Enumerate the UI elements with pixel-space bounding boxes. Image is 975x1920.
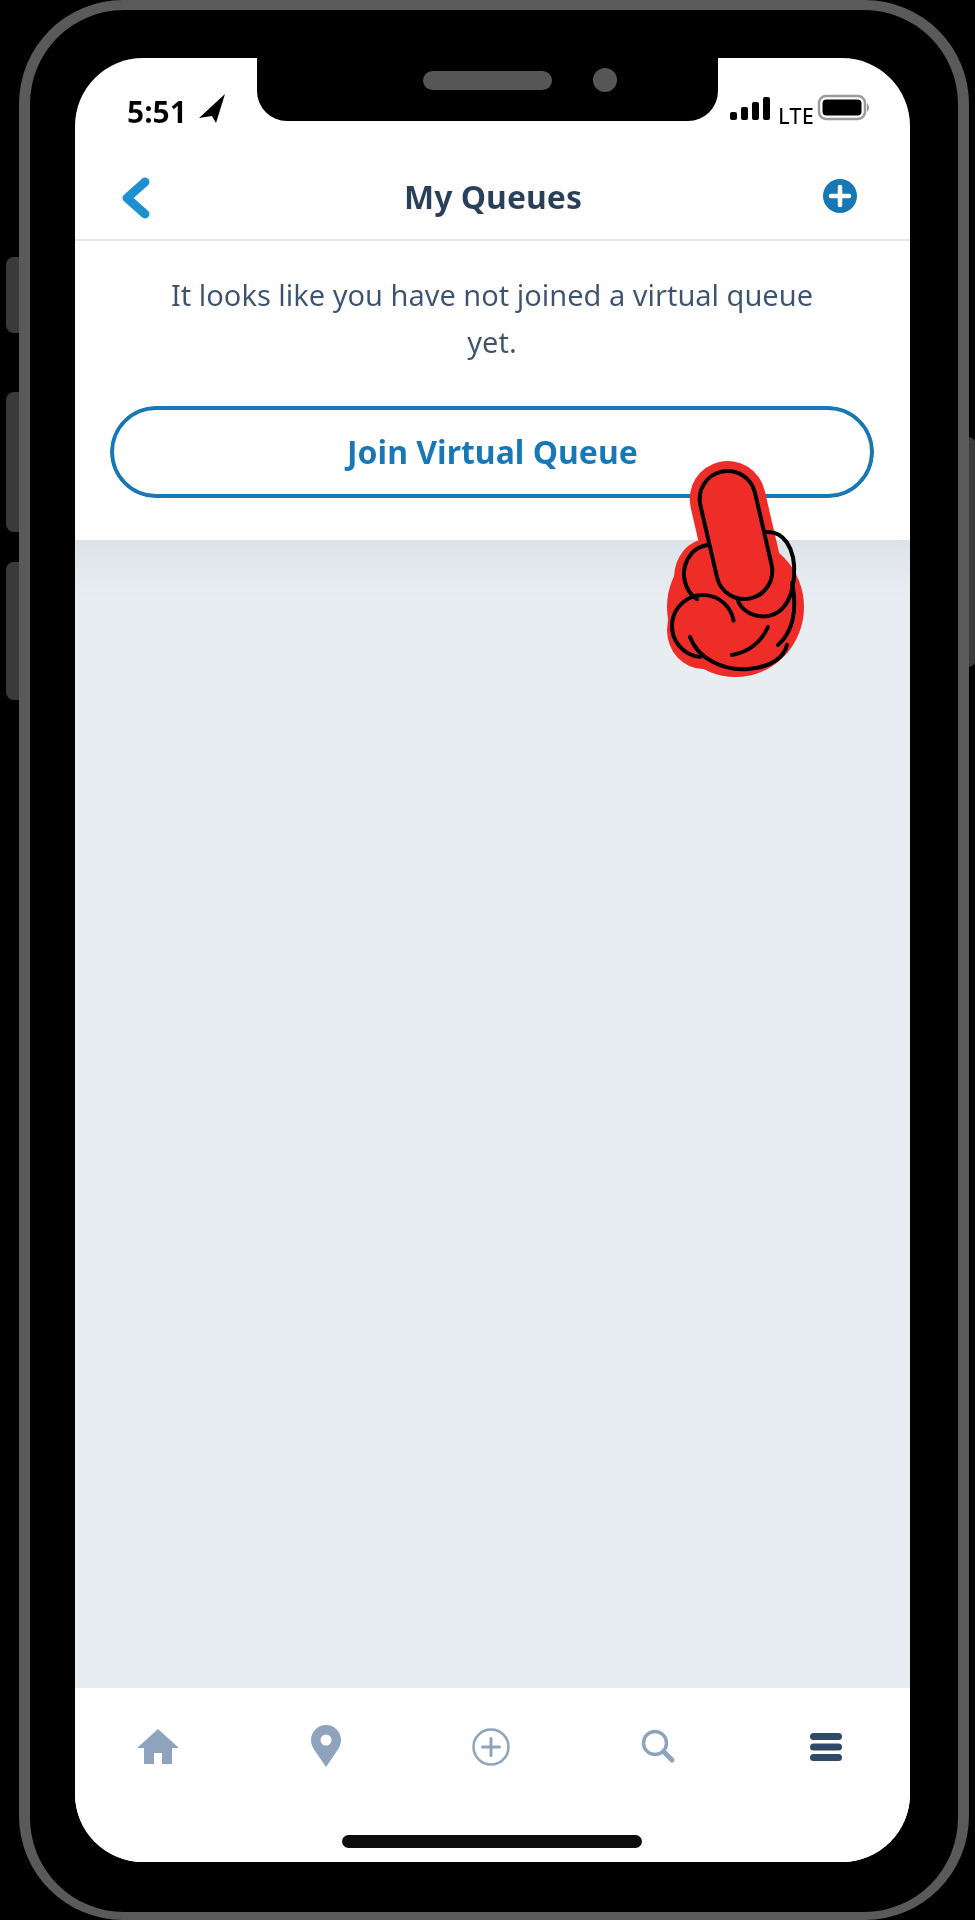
staticText: It looks like you have not joined a virt… [142, 275, 842, 361]
button[interactable] [823, 179, 857, 213]
button[interactable] [619, 1707, 699, 1787]
button[interactable] [118, 1707, 198, 1787]
staticText: 5:51 [127, 91, 187, 132]
button[interactable] [105, 162, 175, 232]
button[interactable] [451, 1707, 531, 1787]
button[interactable] [286, 1707, 366, 1787]
staticText: My Queues [404, 175, 582, 219]
button[interactable]: Join Virtual Queue [110, 406, 874, 498]
button[interactable] [786, 1707, 866, 1787]
staticText: Join Virtual Queue [347, 430, 638, 474]
staticText: LTE [778, 100, 814, 130]
